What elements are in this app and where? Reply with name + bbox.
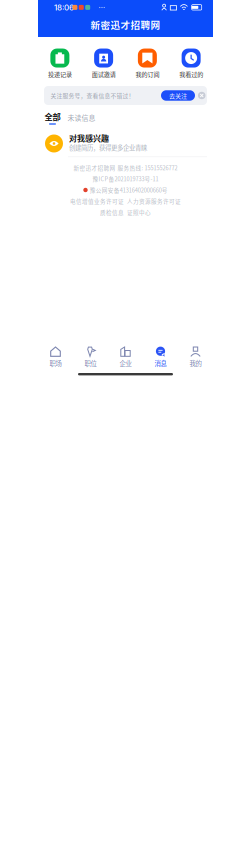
button[interactable]: 职位 [73,346,108,368]
button[interactable]: 未读信息 [67,112,95,122]
staticText: 面试邀请 [92,70,116,78]
staticText: 投递记录 [48,70,72,78]
staticText: 质检信息 证照中心 [100,208,151,216]
staticText: 豫ICP备2021019733号-11 [92,175,158,183]
button[interactable]: 我的 [178,346,213,368]
button[interactable]: 全部 [44,110,60,125]
staticText: 我的订阅 [135,70,159,78]
button[interactable]: 面试邀请 [82,47,126,79]
staticText: 我看过的 [179,70,203,78]
staticText: 我的 [189,359,201,368]
button[interactable]: 消息 [143,346,178,368]
staticText: 电信增值业务许可证 人力资源服务许可证 [70,197,181,205]
button[interactable]: 投递记录 [38,47,82,79]
staticText: 去关注 [169,91,187,100]
button[interactable]: 企业 [108,346,143,368]
staticText: 未读信息 [67,112,95,122]
staticText: 18:06 [54,3,74,12]
staticText: 新密迅才招聘网 [90,17,160,31]
button[interactable]: 我看过的 [169,47,213,79]
staticText: 职位 [84,359,96,368]
staticText: 消息 [154,359,166,368]
staticText: 关注服务号，查看信息不错过！ [50,91,134,100]
staticText: 创建简历，获得更多企业青睐 [69,143,147,152]
staticText: 新密迅才招聘网 服务热线: 15515526772 [73,164,177,172]
button[interactable]: 我的订阅 [125,47,169,79]
staticText: 对我感兴趣 [69,132,109,144]
staticText: 豫公网安备41316402000660号 [90,186,168,194]
button[interactable]: 去关注 [161,90,195,101]
button[interactable]: 职场 [38,346,73,368]
staticText: 全部 [44,110,60,122]
button[interactable]: 对我感兴趣 [45,131,208,156]
staticText: 职场 [49,359,61,368]
staticText: 企业 [119,359,131,368]
button[interactable]: 关闭 [198,92,205,99]
